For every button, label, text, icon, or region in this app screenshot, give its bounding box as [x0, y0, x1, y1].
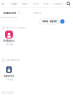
button[interactable]: Music [21, 2, 28, 5]
button[interactable]: Films [32, 2, 39, 5]
button[interactable]: APKs [19, 8, 40, 15]
button[interactable]: Vaultly [0, 63, 18, 90]
staticText: Images [10, 2, 17, 5]
staticText: Installed [3, 11, 16, 15]
staticText: Films [32, 2, 38, 5]
button[interactable]: Contacts [53, 2, 63, 5]
staticText: Contacts [53, 2, 62, 5]
staticText: LAST MONTH [6, 59, 20, 62]
staticText: APKs [33, 11, 40, 15]
button[interactable]: Search [67, 1, 71, 6]
button[interactable]: Files [43, 2, 49, 5]
staticText: Vaultly [3, 74, 14, 77]
button[interactable]: Menu [0, 2, 5, 6]
staticText: Instapic [3, 39, 15, 42]
button[interactable]: Manual upgrade [39, 19, 58, 24]
staticText: RECENTLY UPDATED [6, 26, 26, 29]
staticText: ↓ [61, 20, 63, 23]
button[interactable]: Instapic [0, 30, 18, 57]
staticText: Music [22, 2, 28, 5]
button[interactable]: Images [9, 2, 17, 5]
staticText: Files [43, 2, 48, 5]
staticText: Manual upgrade [41, 20, 56, 23]
staticText: 12 [17, 12, 19, 14]
staticText: 24.1 MB [5, 43, 12, 46]
staticText: 8.4 MB [5, 78, 12, 81]
staticText: OLDER [6, 91, 13, 94]
button[interactable]: Installed [0, 8, 19, 15]
button[interactable]: Download updates [58, 19, 64, 24]
staticText: ≡ [1, 2, 4, 6]
